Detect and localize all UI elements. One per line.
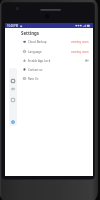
staticText: Enable App Lock	[28, 59, 51, 63]
button[interactable]: Contact us	[5, 65, 93, 74]
staticText: Cloud Backup	[28, 40, 47, 44]
button[interactable]: Capture	[11, 79, 15, 83]
staticText: Language	[28, 50, 42, 54]
button[interactable]: Record	[11, 87, 15, 91]
button[interactable]: Gallery	[11, 98, 15, 102]
button[interactable]: Rate Us	[5, 74, 93, 83]
staticText: coming soon	[71, 40, 89, 44]
staticText: 10:00 PM	[7, 24, 19, 28]
staticText: Rate Us	[28, 77, 39, 81]
staticText: coming soon	[71, 50, 89, 54]
staticText: Contact us	[28, 68, 43, 72]
button[interactable]: Language	[5, 47, 93, 56]
button[interactable]: Cloud Backup	[5, 37, 93, 46]
button[interactable]: Settings	[11, 120, 15, 124]
staticText: Settings	[21, 30, 39, 36]
button[interactable]: Enable App Lock	[5, 56, 93, 65]
